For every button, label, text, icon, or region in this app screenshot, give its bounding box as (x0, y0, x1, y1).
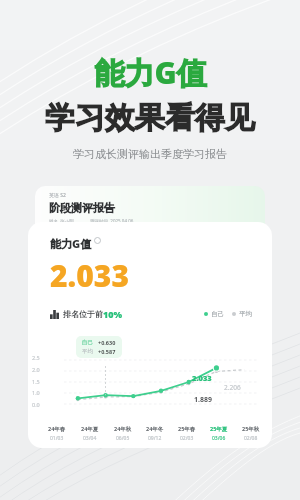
staticText: 能力G值 (50, 236, 92, 251)
staticText: 25年秋 (242, 425, 260, 433)
staticText: 02/08 (244, 435, 258, 442)
staticText: 自己 (211, 310, 224, 318)
staticText: 英语 S2 (49, 192, 66, 199)
staticText: 06/05 (116, 435, 130, 442)
staticText: 25年夏 (210, 425, 228, 433)
staticText: 2.033 (192, 373, 212, 383)
staticText: 阶段测评报告 (49, 201, 115, 215)
staticText: 09/12 (148, 435, 162, 442)
staticText: 学习效果看得见 (45, 99, 255, 137)
staticText: 姓名 张小明 (49, 218, 74, 224)
staticText: 03/04 (83, 435, 97, 442)
staticText: 03/06 (212, 435, 226, 442)
staticText: 24年夏 (81, 425, 99, 433)
staticText: 能力G值 (94, 52, 207, 93)
staticText: 0.0 (32, 401, 40, 408)
staticText: 学习成长测评输出季度学习报告 (73, 147, 227, 161)
staticText: 2.5 (32, 354, 40, 361)
staticText: 1.889 (194, 395, 212, 405)
staticText: +0.587 (98, 348, 116, 355)
button[interactable]: 能力G值 (28, 222, 272, 448)
staticText: 01/03 (50, 435, 64, 442)
staticText: 平均 (239, 310, 252, 318)
staticText: 2.0 (32, 366, 40, 373)
staticText: 排名位于前 (63, 309, 103, 319)
staticText: 1.5 (32, 378, 40, 385)
staticText: 1.0 (32, 389, 40, 396)
staticText: +0.630 (98, 339, 116, 346)
staticText: 24年春 (48, 425, 66, 433)
staticText: 测评时间 2025.04.06 (90, 218, 134, 224)
staticText: 10% (103, 308, 123, 320)
staticText: 24年秋 (114, 425, 132, 433)
staticText: 2.033 (50, 255, 129, 296)
staticText: 02/03 (180, 435, 194, 442)
staticText: 25年春 (178, 425, 196, 433)
staticText: 自己 (82, 339, 93, 346)
staticText: 24年冬 (146, 425, 164, 433)
staticText: 2.206 (224, 383, 241, 392)
staticText: 平均 (82, 348, 93, 355)
button[interactable]: 英语 S2 (35, 186, 265, 236)
